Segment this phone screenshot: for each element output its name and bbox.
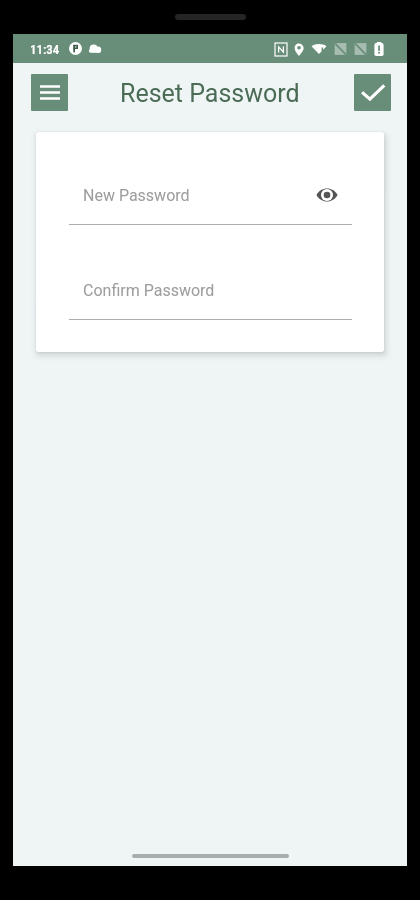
button[interactable]: Confirm Password bbox=[69, 277, 352, 320]
staticText: 11:34 bbox=[30, 42, 60, 57]
staticText: Reset Password bbox=[120, 79, 300, 108]
staticText: Confirm Password bbox=[83, 281, 215, 300]
button[interactable]: New Password bbox=[69, 182, 352, 225]
staticText: New Password bbox=[83, 186, 190, 205]
button[interactable]: Confirm bbox=[354, 74, 391, 111]
button[interactable]: Show password bbox=[311, 179, 343, 211]
button[interactable]: Open navigation menu bbox=[31, 74, 68, 111]
